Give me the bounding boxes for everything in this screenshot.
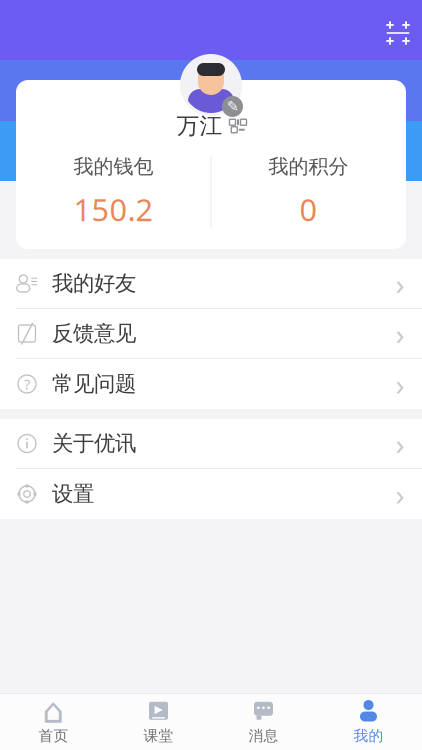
staticText: ? — [24, 374, 30, 394]
button[interactable]: 我的 — [316, 694, 421, 750]
button[interactable]: ⌂ — [1, 694, 106, 750]
staticText: 课堂 — [143, 727, 173, 745]
staticText: 0 — [299, 189, 317, 230]
button[interactable]: 我的钱包 — [16, 156, 210, 228]
staticText: ▶ — [154, 703, 162, 715]
staticText: 万江 — [176, 112, 222, 140]
button[interactable]: 我的好友 — [0, 259, 422, 309]
staticText: › — [395, 364, 404, 403]
staticText: 我的好友 — [52, 270, 136, 297]
staticText: 常见问题 — [52, 371, 136, 397]
button[interactable]: 我的积分 — [211, 156, 405, 228]
staticText: › — [395, 314, 404, 353]
staticText: ⌂ — [42, 691, 64, 730]
staticText: › — [395, 264, 404, 303]
button[interactable]: ? — [0, 359, 422, 409]
button[interactable]: ▶ — [106, 694, 211, 750]
staticText: 关于优讯 — [52, 430, 136, 457]
staticText: ╱ — [21, 323, 32, 344]
staticText: 消息 — [248, 727, 278, 745]
button[interactable]: 消息 — [211, 694, 316, 750]
button[interactable]: 关于优讯 — [0, 419, 422, 469]
staticText: › — [395, 424, 404, 463]
staticText: 150.2 — [73, 189, 153, 230]
staticText: 反馈意见 — [52, 320, 136, 347]
button[interactable]: 扫一扫 — [376, 11, 420, 55]
button[interactable]: ╱ — [0, 309, 422, 359]
staticText: ✎ — [226, 98, 238, 115]
staticText: 首页 — [38, 727, 68, 745]
button[interactable]: 设置 — [0, 469, 422, 519]
button[interactable]: 编辑头像 — [176, 50, 246, 120]
staticText: 我的钱包 — [73, 154, 153, 179]
staticText: 我的 — [353, 727, 383, 745]
staticText: 设置 — [52, 481, 94, 507]
staticText: 我的积分 — [268, 154, 348, 179]
staticText: › — [395, 474, 404, 513]
